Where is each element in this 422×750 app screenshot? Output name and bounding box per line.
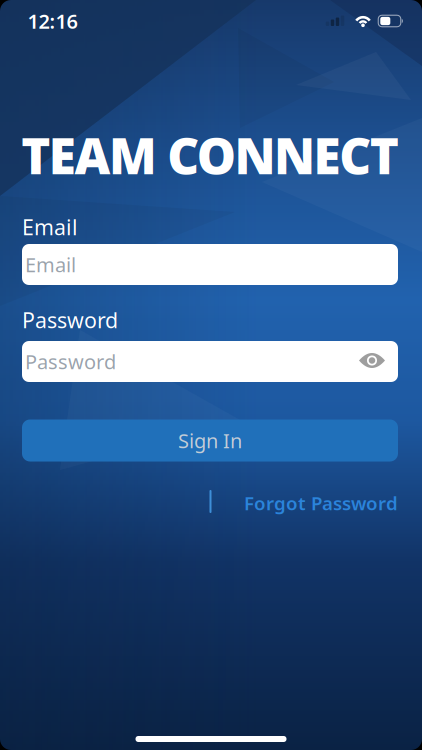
- staticText: TEAM CONNECT: [21, 122, 399, 188]
- staticText: Forgot Password: [244, 491, 398, 515]
- staticText: Email: [25, 251, 76, 278]
- button[interactable]: Show password: [357, 348, 387, 372]
- button[interactable]: Sign In: [22, 419, 398, 461]
- button[interactable]: Forgot Password: [244, 491, 398, 515]
- staticText: Sign In: [178, 427, 242, 454]
- button[interactable]: Email: [22, 244, 398, 285]
- staticText: Password: [25, 348, 116, 375]
- staticText: 12:16: [27, 8, 77, 34]
- staticText: Email: [22, 213, 78, 241]
- button[interactable]: Password: [22, 341, 398, 382]
- staticText: Password: [22, 306, 118, 334]
